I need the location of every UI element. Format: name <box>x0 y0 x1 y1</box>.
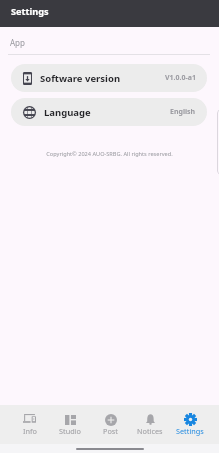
staticText: App <box>10 37 25 48</box>
staticText: Settings <box>11 5 49 18</box>
staticText: Studio <box>59 426 81 436</box>
button[interactable]: Post <box>90 413 130 436</box>
staticText: English <box>170 107 196 117</box>
staticText: Language <box>44 106 91 119</box>
button[interactable]: Notices <box>130 413 170 436</box>
staticText: Settings <box>176 426 204 436</box>
button[interactable]: Software version <box>11 64 207 92</box>
button[interactable]: Settings <box>170 413 210 436</box>
staticText: Copyright© 2024 AUO-SRBG. All rights res… <box>0 150 219 158</box>
staticText: Post <box>103 426 118 436</box>
staticText: Info <box>23 426 37 436</box>
staticText: V1.0.0-a1 <box>165 73 196 83</box>
staticText: Notices <box>137 426 163 436</box>
button[interactable]: Language <box>11 98 207 126</box>
button[interactable]: Info <box>9 413 50 436</box>
button[interactable]: Studio <box>50 413 90 436</box>
staticText: Software version <box>40 72 121 85</box>
